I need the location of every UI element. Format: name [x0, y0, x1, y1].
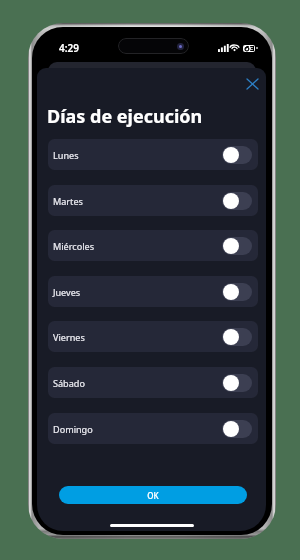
button[interactable]: OK: [59, 486, 247, 504]
button[interactable]: Sábado: [48, 367, 258, 398]
button[interactable]: Lunes: [48, 139, 258, 170]
staticText: Días de ejecución: [47, 104, 203, 129]
staticText: Jueves: [53, 286, 81, 298]
button[interactable]: Miércoles: [48, 230, 258, 261]
staticText: Viernes: [53, 331, 85, 343]
staticText: Miércoles: [53, 240, 94, 252]
staticText: Martes: [53, 195, 83, 207]
staticText: OK: [147, 490, 159, 501]
button[interactable]: Martes: [48, 185, 258, 216]
staticText: Domingo: [53, 423, 93, 435]
staticText: Sábado: [53, 377, 85, 389]
button[interactable]: Cerrar: [240, 72, 264, 96]
staticText: Lunes: [53, 149, 79, 161]
button[interactable]: Domingo: [48, 413, 258, 444]
button[interactable]: Viernes: [48, 321, 258, 352]
button[interactable]: Jueves: [48, 276, 258, 307]
staticText: 4:29: [59, 41, 79, 55]
